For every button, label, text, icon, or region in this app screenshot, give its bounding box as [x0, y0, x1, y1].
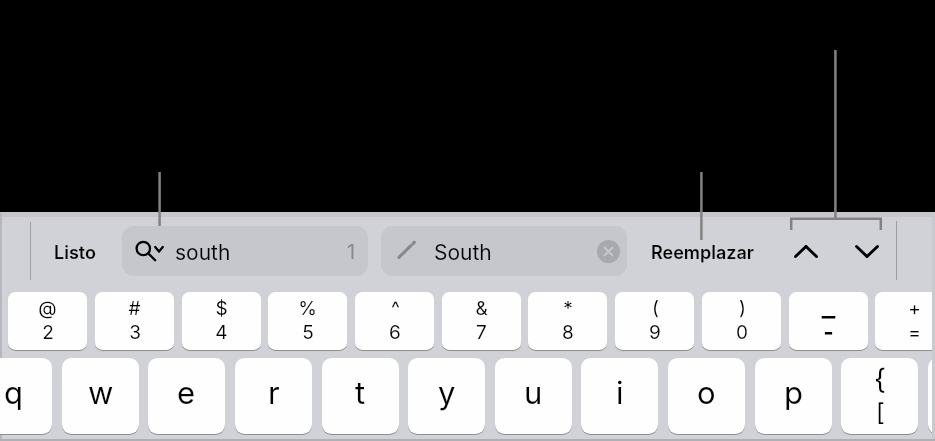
button[interactable]: u	[495, 358, 572, 434]
staticText: {	[874, 362, 886, 396]
button[interactable]: p	[755, 358, 832, 434]
button[interactable]: q	[0, 358, 52, 434]
button[interactable]: *	[528, 292, 607, 350]
staticText: 1	[347, 240, 356, 264]
button[interactable]: e	[148, 358, 225, 434]
button[interactable]: o	[668, 358, 745, 434]
staticText: 8	[562, 321, 574, 344]
staticText: 7	[476, 321, 487, 344]
staticText: $	[215, 297, 228, 320]
button[interactable]: Borrar texto	[597, 240, 620, 263]
staticText: Reemplazar	[651, 242, 754, 264]
button[interactable]: south	[122, 226, 368, 276]
staticText: #	[128, 297, 141, 320]
staticText: t	[355, 374, 366, 412]
button[interactable]: w	[62, 358, 139, 434]
staticText: Listo	[54, 242, 96, 264]
staticText: south	[175, 240, 231, 265]
staticText: &	[475, 297, 488, 320]
button[interactable]: r	[235, 358, 312, 434]
button[interactable]: Tecla siguiente	[928, 358, 935, 434]
staticText: y	[438, 374, 456, 412]
staticText: 4	[215, 321, 228, 344]
staticText: r	[268, 374, 280, 412]
staticText: %	[298, 297, 317, 320]
staticText: 6	[389, 321, 401, 344]
staticText: =	[908, 321, 921, 344]
button[interactable]: ^	[355, 292, 434, 350]
staticText: i	[616, 374, 624, 412]
button[interactable]: i	[581, 358, 658, 434]
staticText: (	[652, 297, 659, 320]
staticText: q	[4, 374, 23, 412]
staticText: +	[908, 297, 921, 320]
button[interactable]: +	[875, 292, 935, 350]
staticText: *	[563, 297, 573, 320]
button[interactable]: {	[841, 358, 918, 434]
button[interactable]: guion bajo, guion	[789, 292, 868, 350]
staticText: 5	[302, 321, 314, 344]
staticText: ^	[391, 297, 400, 320]
staticText: South	[434, 240, 492, 265]
button[interactable]: South	[381, 226, 627, 276]
button[interactable]: #	[95, 292, 174, 350]
button[interactable]: &	[442, 292, 521, 350]
button[interactable]: t	[322, 358, 399, 434]
staticText: w	[88, 374, 114, 412]
button[interactable]: )	[702, 292, 781, 350]
staticText: )	[739, 297, 746, 320]
button[interactable]: Listo	[44, 228, 106, 278]
staticText: 0	[736, 321, 748, 344]
staticText: p	[784, 374, 803, 412]
staticText: 9	[649, 321, 661, 344]
staticText: o	[697, 374, 716, 412]
button[interactable]: Reemplazar	[643, 228, 761, 278]
button[interactable]: Anterior	[783, 226, 828, 276]
staticText: u	[524, 374, 543, 412]
staticText: e	[177, 374, 196, 412]
button[interactable]: y	[408, 358, 485, 434]
button[interactable]: (	[615, 292, 694, 350]
staticText: 3	[129, 321, 141, 344]
button[interactable]: Siguiente	[844, 226, 889, 276]
staticText: @	[38, 297, 57, 320]
staticText: 2	[42, 321, 54, 344]
staticText: [	[876, 398, 885, 427]
button[interactable]: %	[268, 292, 347, 350]
button[interactable]: @	[8, 292, 87, 350]
button[interactable]: $	[182, 292, 261, 350]
